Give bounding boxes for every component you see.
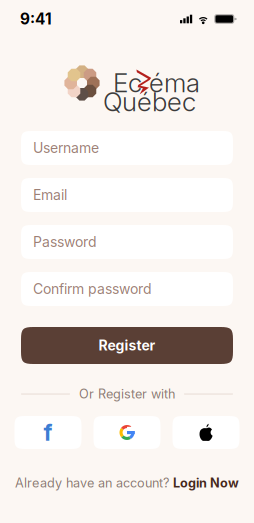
staticText: Email — [33, 186, 67, 203]
staticText: Already have an account? — [15, 475, 173, 491]
button[interactable]: Confirm password — [21, 272, 233, 306]
staticText: 9:41 — [20, 10, 52, 28]
staticText: f — [43, 419, 52, 446]
staticText: Québec — [103, 86, 196, 117]
button[interactable]: Continue with Apple — [172, 416, 239, 449]
staticText: Password — [33, 233, 97, 250]
staticText: Confirm password — [33, 280, 152, 297]
staticText: Login Now — [173, 475, 239, 491]
button[interactable]: Register — [21, 327, 233, 364]
button[interactable]: Username — [21, 131, 233, 165]
staticText: Register — [98, 337, 155, 354]
staticText: éma — [149, 67, 200, 98]
staticText: Or Register with — [79, 386, 175, 402]
button[interactable]: Email — [21, 178, 233, 212]
button[interactable]: Already have an account? — [21, 476, 233, 490]
staticText: Username — [33, 139, 99, 156]
button[interactable]: Continue with Facebook — [14, 416, 81, 449]
button[interactable]: Password — [21, 225, 233, 259]
staticText: Ec — [113, 67, 142, 98]
button[interactable]: Continue with Google — [93, 416, 160, 449]
